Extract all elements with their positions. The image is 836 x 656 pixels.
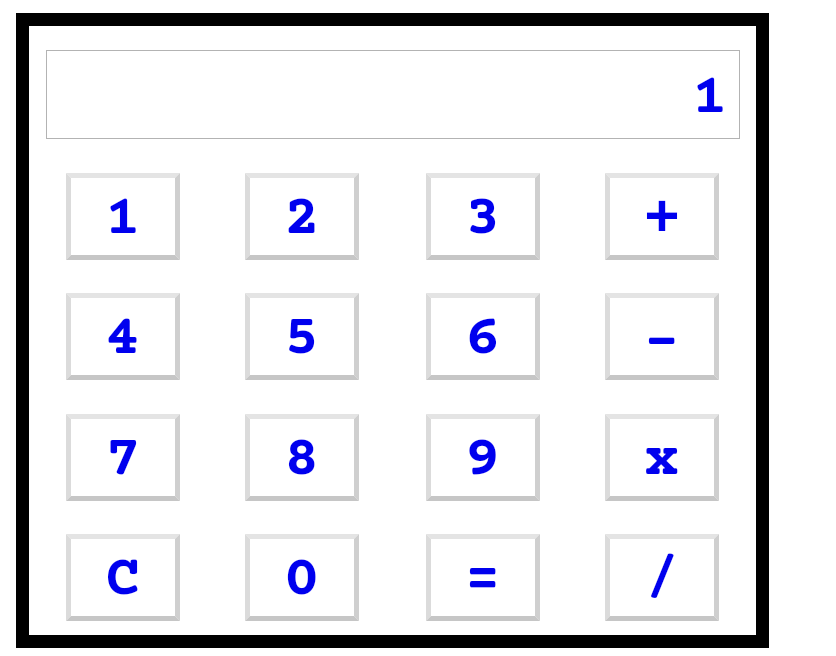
button[interactable]: 7: [66, 414, 180, 501]
staticText: 1: [105, 187, 141, 253]
button[interactable]: 9: [426, 414, 540, 501]
staticText: 0: [284, 548, 320, 614]
button[interactable]: 1: [46, 50, 740, 139]
button[interactable]: 5: [245, 293, 359, 380]
staticText: 6: [465, 307, 501, 373]
staticText: 5: [284, 307, 320, 373]
button[interactable]: -: [605, 293, 719, 380]
staticText: 3: [465, 187, 501, 253]
staticText: +: [644, 186, 681, 254]
button[interactable]: 8: [245, 414, 359, 501]
staticText: 9: [465, 428, 501, 494]
button[interactable]: x: [605, 414, 719, 501]
button[interactable]: 3: [426, 173, 540, 260]
staticText: 1: [692, 66, 728, 132]
staticText: /: [647, 549, 678, 606]
staticText: 2: [284, 187, 320, 253]
button[interactable]: 2: [245, 173, 359, 260]
staticText: =: [465, 548, 501, 614]
button[interactable]: =: [426, 534, 540, 621]
button[interactable]: 6: [426, 293, 540, 380]
staticText: x: [644, 428, 680, 494]
button[interactable]: /: [605, 534, 719, 621]
staticText: C: [105, 548, 141, 614]
staticText: 7: [105, 428, 141, 494]
button[interactable]: 0: [245, 534, 359, 621]
staticText: 8: [284, 428, 320, 494]
button[interactable]: 1: [66, 173, 180, 260]
button[interactable]: C: [66, 534, 180, 621]
button[interactable]: +: [605, 173, 719, 260]
button[interactable]: 4: [66, 293, 180, 380]
staticText: -: [644, 311, 680, 377]
staticText: 4: [105, 307, 141, 373]
